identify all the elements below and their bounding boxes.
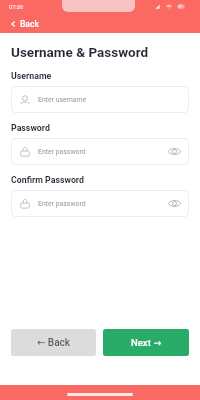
staticText: Confirm Password <box>11 175 84 185</box>
staticText: Enter password <box>38 148 86 156</box>
button[interactable]: Show password <box>168 200 181 207</box>
staticText: Password <box>11 123 50 133</box>
button[interactable]: Show password <box>168 148 181 155</box>
staticText: Username <box>11 71 52 81</box>
staticText: Username & Password <box>11 44 149 60</box>
staticText: 07:38 <box>9 4 24 11</box>
button[interactable]: Enter username <box>11 86 189 113</box>
staticText: ← Back <box>37 337 71 349</box>
button[interactable]: ← Back <box>11 329 96 356</box>
button[interactable]: Next → <box>103 329 189 356</box>
button[interactable]: Enter password <box>11 190 189 217</box>
staticText: Next → <box>131 337 162 348</box>
button[interactable]: Back <box>8 18 41 30</box>
staticText: Back <box>20 19 39 29</box>
button[interactable]: Enter password <box>11 138 189 165</box>
staticText: Enter password <box>38 200 86 208</box>
staticText: Enter username <box>38 96 87 104</box>
